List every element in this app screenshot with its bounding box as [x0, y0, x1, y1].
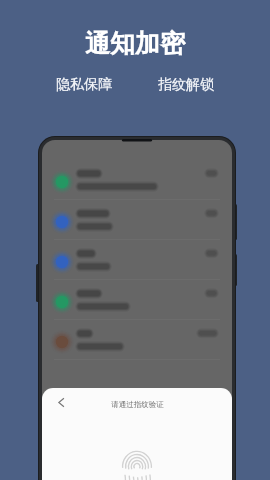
button[interactable]: [42, 280, 232, 320]
staticText: 指纹解锁: [158, 76, 214, 94]
button[interactable]: 返回: [51, 392, 71, 412]
staticText: 请通过指纹验证: [111, 400, 164, 409]
button[interactable]: 指纹验证: [121, 450, 153, 480]
button[interactable]: [42, 160, 232, 200]
staticText: 隐私保障: [56, 76, 112, 94]
button[interactable]: [42, 200, 232, 240]
button[interactable]: [42, 240, 232, 280]
button[interactable]: [42, 320, 232, 360]
staticText: 通知加密: [85, 28, 185, 59]
